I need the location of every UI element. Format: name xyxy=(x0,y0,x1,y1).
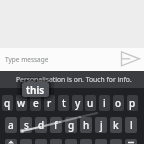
button[interactable] xyxy=(119,50,141,67)
staticText: s xyxy=(24,118,29,132)
button[interactable] xyxy=(5,139,17,144)
button[interactable]: s xyxy=(20,117,32,133)
button[interactable]: r xyxy=(44,95,55,111)
button[interactable]: f xyxy=(50,117,62,133)
staticText: w xyxy=(17,96,26,110)
button[interactable] xyxy=(95,139,107,144)
button[interactable] xyxy=(125,139,137,144)
button[interactable]: y xyxy=(72,95,83,111)
button[interactable]: Type message xyxy=(0,48,144,71)
staticText: t xyxy=(62,96,66,110)
staticText: l xyxy=(130,118,133,132)
button[interactable]: j xyxy=(95,117,107,133)
button[interactable] xyxy=(35,139,47,144)
button[interactable] xyxy=(80,139,92,144)
staticText: r xyxy=(47,96,52,110)
staticText: Personalisation is on. Touch for info. xyxy=(16,75,132,84)
staticText: e xyxy=(33,96,39,110)
staticText: u xyxy=(87,96,94,110)
staticText: y xyxy=(75,96,81,110)
button[interactable]: w xyxy=(16,95,27,111)
staticText: g xyxy=(68,118,75,132)
button[interactable]: u xyxy=(85,95,96,111)
button[interactable]: l xyxy=(125,117,137,133)
staticText: this xyxy=(26,83,45,97)
staticText: o xyxy=(115,96,122,110)
button[interactable]: i xyxy=(99,95,110,111)
button[interactable]: this xyxy=(22,82,49,97)
button[interactable] xyxy=(20,139,32,144)
button[interactable]: Personalisation is on. Touch for info. xyxy=(0,71,144,88)
staticText: k xyxy=(113,118,119,132)
button[interactable]: a xyxy=(5,117,17,133)
staticText: j xyxy=(100,118,103,132)
staticText: a xyxy=(8,118,14,132)
staticText: q xyxy=(4,96,11,110)
button[interactable] xyxy=(110,139,122,144)
button[interactable]: d xyxy=(35,117,47,133)
staticText: Type message xyxy=(5,55,49,64)
button[interactable]: h xyxy=(80,117,92,133)
button[interactable]: g xyxy=(65,117,77,133)
button[interactable]: k xyxy=(110,117,122,133)
staticText: f xyxy=(54,118,58,132)
staticText: p xyxy=(129,96,136,110)
button[interactable] xyxy=(50,139,62,144)
button[interactable]: t xyxy=(58,95,69,111)
staticText: i xyxy=(103,96,106,110)
button[interactable] xyxy=(65,139,77,144)
button[interactable]: q xyxy=(2,95,13,111)
button[interactable]: e xyxy=(30,95,41,111)
button[interactable]: o xyxy=(113,95,124,111)
staticText: d xyxy=(38,118,45,132)
button[interactable]: p xyxy=(127,95,138,111)
staticText: h xyxy=(83,118,90,132)
